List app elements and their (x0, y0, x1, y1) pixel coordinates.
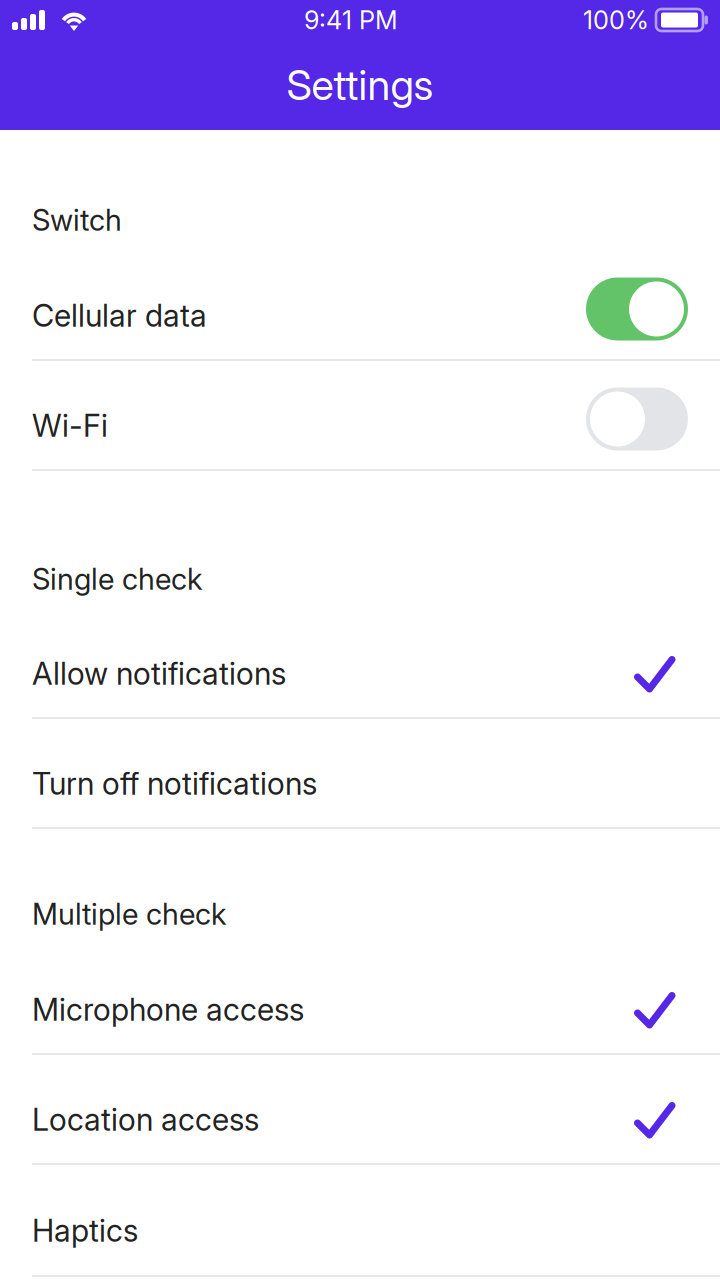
staticText: Multiple check (32, 896, 227, 932)
staticText: Cellular data (32, 297, 207, 334)
button[interactable]: Microphone access (0, 945, 720, 1053)
staticText: 100% (583, 5, 649, 35)
button[interactable]: Turn off notifications (0, 719, 720, 827)
button[interactable]: Haptics (0, 1165, 720, 1275)
staticText: Allow notifications (32, 655, 286, 692)
staticText: Haptics (32, 1212, 138, 1249)
staticText: Location access (32, 1101, 259, 1138)
button[interactable]: Wi-Fi (0, 361, 720, 469)
staticText: Settings (286, 60, 433, 110)
button[interactable]: Location access (0, 1055, 720, 1163)
staticText: Turn off notifications (32, 765, 317, 802)
staticText: Switch (32, 202, 122, 238)
button[interactable]: Cellular data (0, 251, 720, 359)
staticText: Microphone access (32, 991, 304, 1028)
staticText: 9:41 PM (304, 5, 398, 35)
button[interactable]: Allow notifications (0, 609, 720, 717)
staticText: Wi-Fi (32, 407, 108, 444)
staticText: Single check (32, 561, 203, 597)
